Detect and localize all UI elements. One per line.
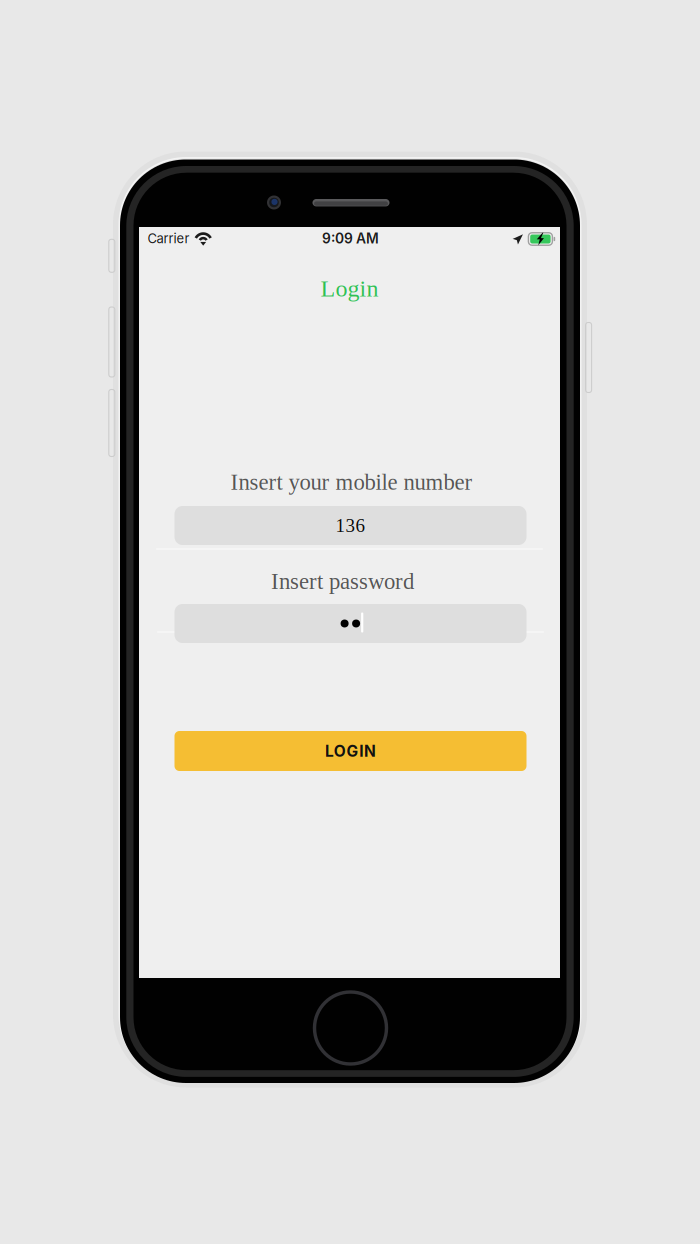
staticText: Login [320, 275, 378, 302]
button[interactable]: LOGIN [174, 731, 526, 771]
staticText: 9:09 AM [322, 230, 379, 247]
button[interactable] [174, 604, 526, 643]
staticText: Insert password [271, 569, 414, 594]
staticText: LOGIN [325, 742, 376, 760]
staticText: Carrier [147, 231, 189, 246]
button[interactable]: 136 [174, 506, 526, 545]
staticText: 136 [335, 515, 365, 536]
staticText: Insert your mobile number [230, 470, 472, 495]
